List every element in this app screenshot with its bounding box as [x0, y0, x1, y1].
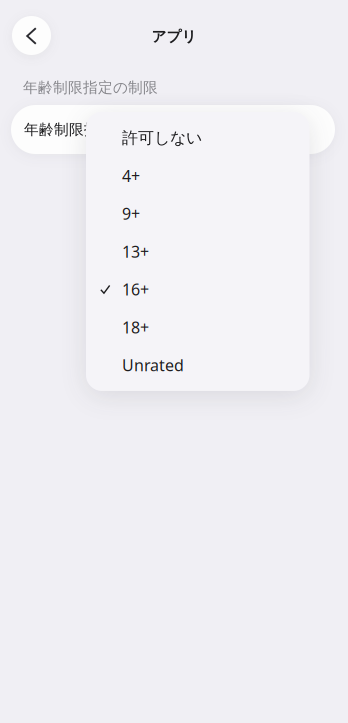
staticText: 13+: [122, 241, 149, 262]
button[interactable]: 16+: [86, 270, 309, 308]
staticText: 年齢制限指定の制限: [23, 78, 158, 96]
staticText: 16+: [122, 279, 149, 300]
staticText: アプリ: [151, 27, 196, 45]
staticText: 年齢制限指定: [24, 120, 114, 138]
button[interactable]: 年齢制限指定: [11, 105, 335, 154]
button[interactable]: 18+: [86, 308, 309, 346]
staticText: 9+: [122, 203, 140, 224]
staticText: 許可しない: [122, 128, 202, 148]
staticText: Unrated: [122, 354, 184, 376]
staticText: 4+: [122, 165, 140, 186]
button[interactable]: Unrated: [86, 346, 309, 384]
button[interactable]: 9+: [86, 195, 309, 233]
button[interactable]: 許可しない: [86, 119, 309, 157]
staticText: 18+: [122, 317, 149, 338]
button[interactable]: 13+: [86, 233, 309, 270]
button[interactable]: 4+: [86, 157, 309, 195]
button[interactable]: Back: [12, 16, 51, 55]
